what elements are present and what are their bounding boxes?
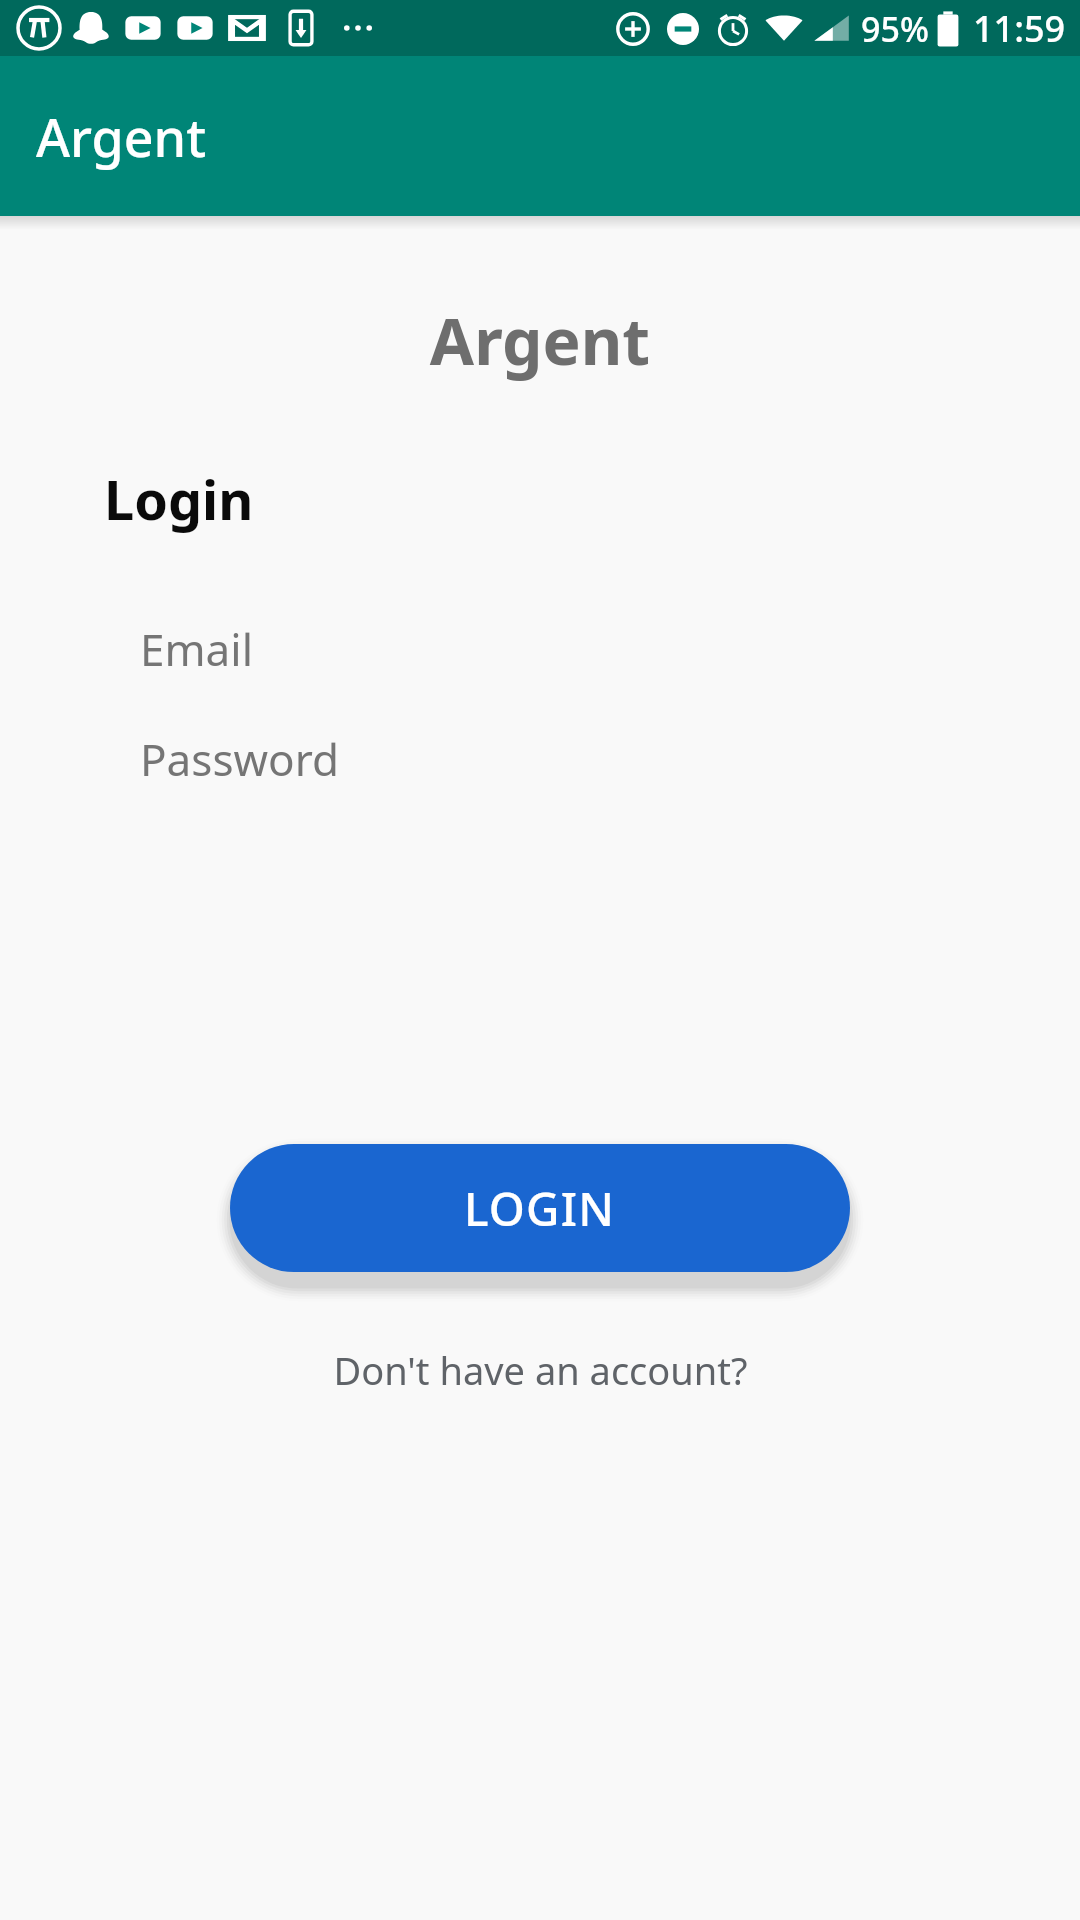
staticText: 95%	[861, 6, 929, 52]
staticText: Don't have an account?	[333, 1344, 748, 1396]
staticText: Login	[104, 462, 254, 536]
staticText: Email	[140, 619, 253, 679]
button[interactable]: LOGIN	[230, 1144, 850, 1272]
staticText: 11:59	[973, 4, 1066, 53]
button[interactable]: Don't have an account?	[0, 1344, 1080, 1396]
button[interactable]: Password	[104, 724, 976, 794]
staticText: Argent	[36, 101, 207, 172]
staticText: Password	[140, 729, 340, 789]
staticText: LOGIN	[464, 1177, 616, 1240]
button[interactable]: Email	[104, 614, 976, 684]
staticText: Argent	[0, 297, 1080, 384]
